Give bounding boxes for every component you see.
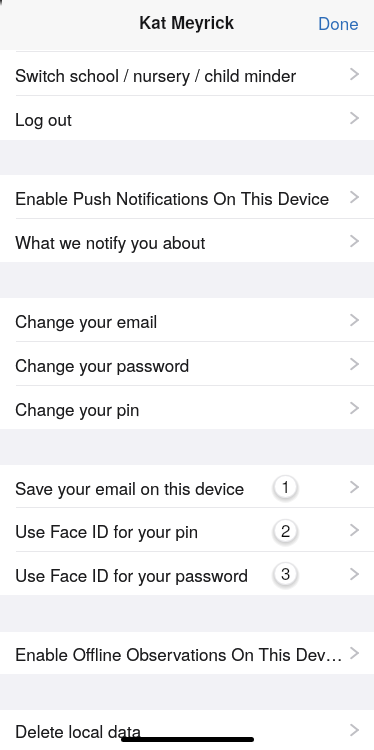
button[interactable]: Use Face ID for your pin [0, 508, 374, 552]
staticText: Enable Offline Observations On This Devi… [15, 641, 345, 665]
button[interactable]: Change your email [0, 298, 374, 342]
button[interactable]: Use Face ID for your password [0, 552, 374, 595]
staticText: Use Face ID for your password [15, 562, 249, 586]
button[interactable]: Change your password [0, 342, 374, 386]
staticText: 3 [281, 563, 291, 581]
staticText: Enable Push Notifications On This Device [15, 185, 330, 209]
staticText: Save your email on this device [15, 475, 245, 499]
staticText: 1 [281, 476, 291, 494]
staticText: Switch school / nursery / child minder [15, 62, 297, 86]
staticText: Change your password [15, 352, 190, 376]
staticText: Enable Offline Observations On This Devi… [15, 641, 345, 665]
staticText: Use Face ID for your password [15, 562, 249, 586]
button[interactable]: Enable Offline Observations On This Devi… [0, 632, 374, 674]
staticText: Use Face ID for your pin [15, 518, 199, 542]
staticText: What we notify you about [15, 229, 206, 253]
button[interactable]: Save your email on this device [0, 465, 374, 508]
button[interactable]: Delete local data [0, 710, 374, 750]
staticText: Done [318, 10, 359, 34]
staticText: Delete local data [15, 718, 142, 742]
staticText: Switch school / nursery / child minder [15, 62, 297, 86]
button[interactable]: Switch school / nursery / child minder [0, 52, 374, 96]
staticText: Enable Push Notifications On This Device [15, 185, 330, 209]
button[interactable]: What we notify you about [0, 219, 374, 262]
staticText: Delete local data [15, 718, 142, 742]
staticText: Log out [15, 106, 72, 130]
staticText: 2 [281, 520, 291, 538]
button[interactable]: Enable Push Notifications On This Device [0, 175, 374, 219]
staticText: Change your email [15, 308, 158, 332]
staticText: Kat Meyrick [139, 10, 235, 34]
button[interactable]: Change your pin [0, 386, 374, 429]
staticText: Change your pin [15, 396, 140, 420]
button[interactable]: Log out [0, 96, 374, 140]
staticText: Use Face ID for your pin [15, 518, 199, 542]
staticText: Change your pin [15, 396, 140, 420]
staticText: Change your password [15, 352, 190, 376]
staticText: Change your email [15, 308, 158, 332]
staticText: Save your email on this device [15, 475, 245, 499]
button[interactable]: Done [303, 2, 374, 42]
staticText: What we notify you about [15, 229, 206, 253]
staticText: Log out [15, 106, 72, 130]
